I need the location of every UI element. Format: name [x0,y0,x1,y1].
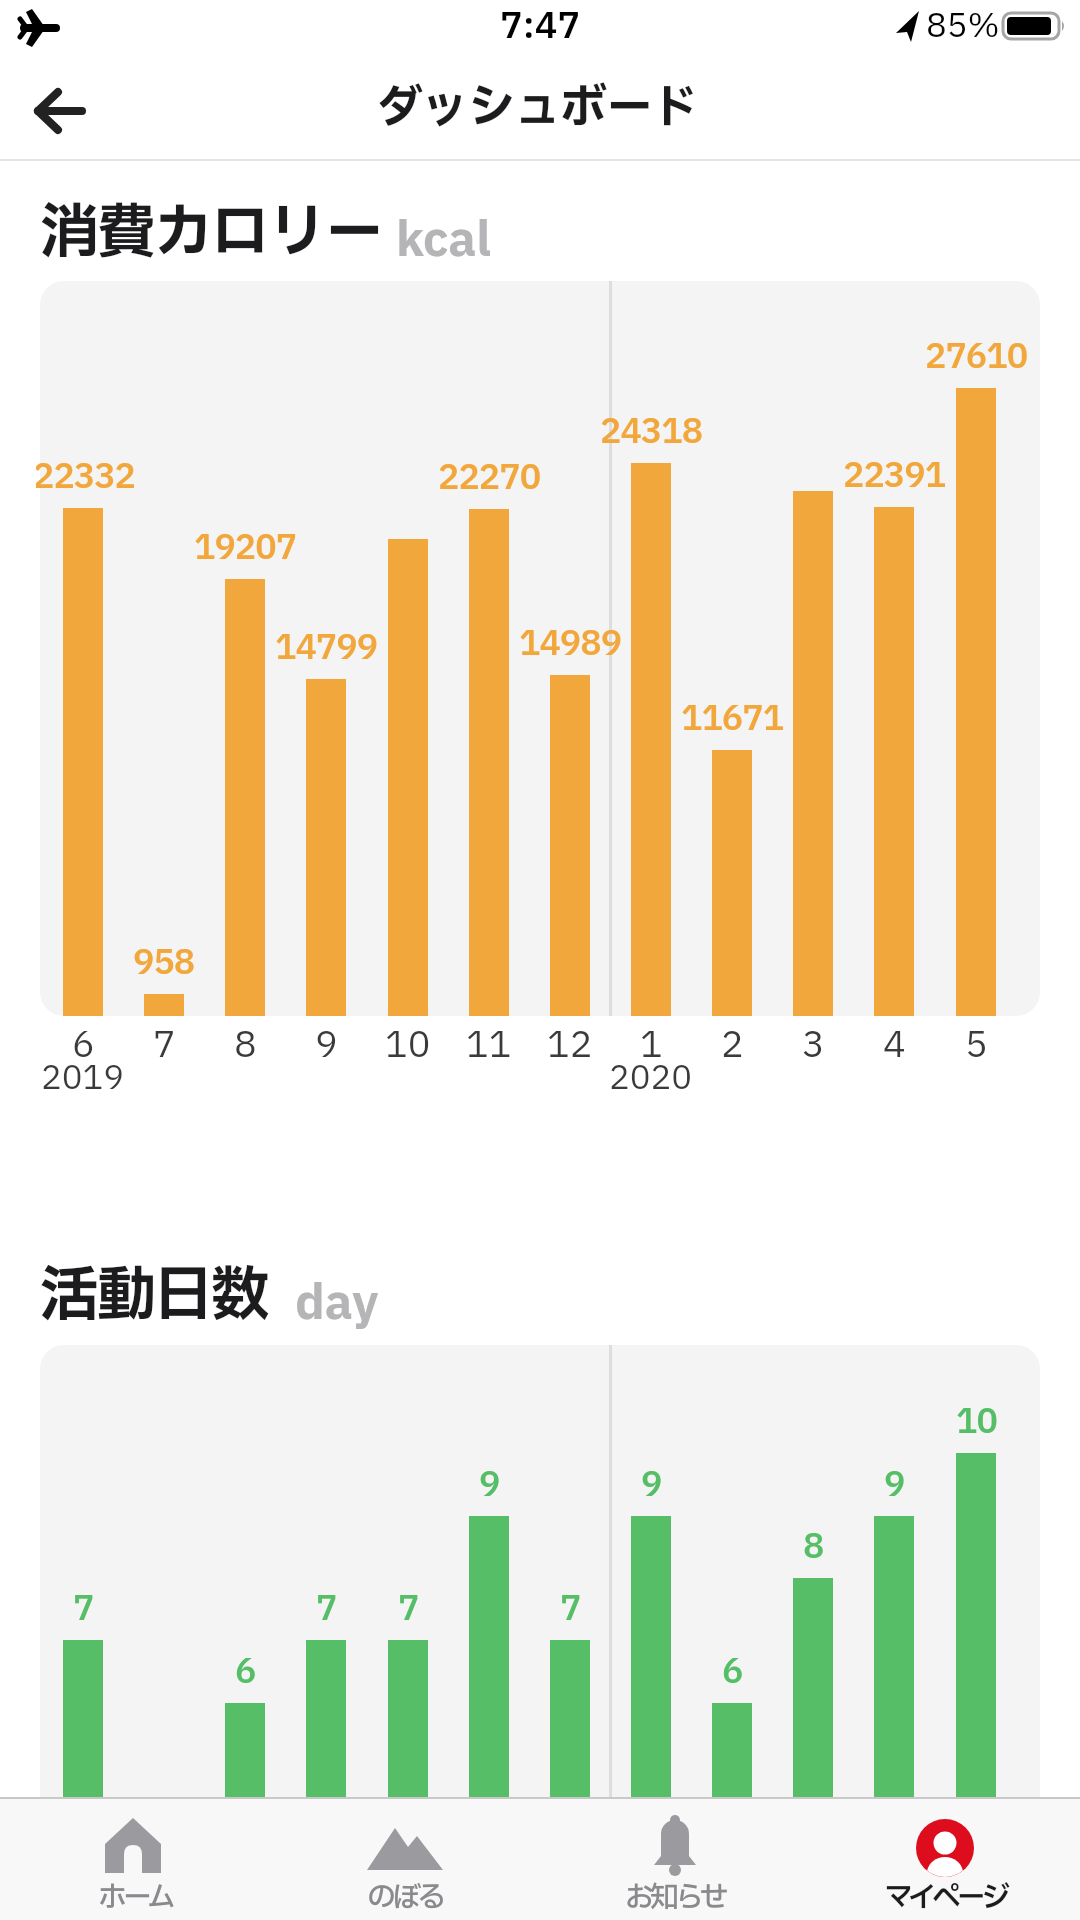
staticText: 8 [234,1019,257,1073]
staticText: 14989 [519,619,622,670]
staticText: 19207 [194,523,297,574]
staticText: 10 [385,1019,431,1073]
button[interactable]: マイページ [810,1799,1080,1920]
staticText: 22332 [36,452,136,503]
staticText: 7 [316,1584,337,1635]
staticText: 958 [133,938,195,989]
staticText: 11671 [681,694,784,745]
staticText: 10 [956,1397,997,1448]
staticText: 6 [235,1647,256,1698]
staticText: 9 [479,1460,500,1511]
staticText: 27610 [925,332,1028,383]
staticText: 9 [315,1019,338,1073]
staticText: day [295,1269,379,1339]
staticText: 12 [547,1019,593,1073]
staticText: 24318 [600,407,703,458]
staticText: 7 [560,1584,581,1635]
staticText: kcal [396,206,491,276]
staticText: 6 [722,1647,743,1698]
staticText: 5 [965,1019,988,1073]
staticText: 85% [926,2,1000,51]
staticText: 活動日数 [40,1252,269,1340]
staticText: マイページ [884,1876,1007,1919]
staticText: 7 [398,1584,419,1635]
button[interactable]: のぼる [270,1799,540,1920]
staticText: 7:47 [500,0,581,54]
button[interactable] [20,76,100,146]
staticText: ダッシュボード [376,73,698,143]
staticText: ホーム [98,1876,172,1919]
staticText: 4 [883,1019,906,1073]
staticText: お知らせ [625,1876,725,1919]
staticText: 2019 [41,1054,125,1103]
staticText: 9 [884,1460,905,1511]
staticText: 消費カロリー [40,189,383,277]
staticText: 22270 [438,453,541,504]
staticText: 9 [641,1460,662,1511]
staticText: 2 [721,1019,744,1073]
button[interactable]: お知らせ [540,1799,810,1920]
staticText: 2020 [609,1054,693,1103]
staticText: 14799 [275,623,378,674]
staticText: 7 [153,1019,176,1073]
staticText: 7 [73,1584,94,1635]
staticText: 22391 [843,451,946,502]
staticText: 11 [466,1019,512,1073]
button[interactable]: ホーム [0,1799,270,1920]
staticText: 3 [802,1019,825,1073]
staticText: 8 [803,1522,824,1573]
staticText: 1 [640,1019,663,1073]
staticText: のぼる [367,1876,443,1919]
staticText: 6 [72,1019,95,1073]
